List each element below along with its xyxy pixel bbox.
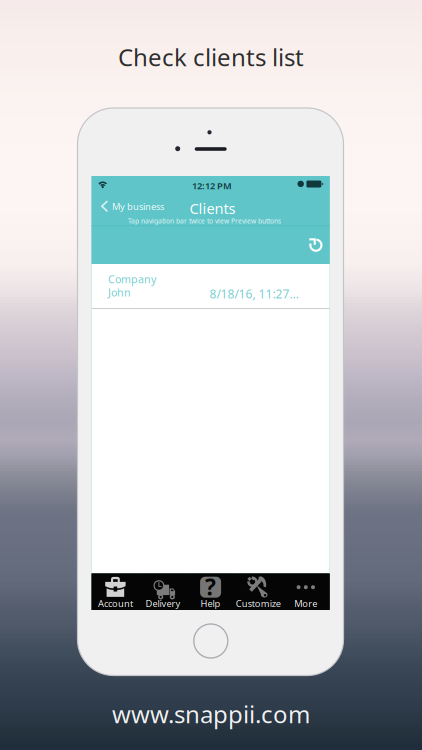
button[interactable]: ? (187, 573, 234, 610)
staticText: 12:12 PM (192, 179, 232, 192)
button[interactable]: Customize (234, 573, 282, 610)
staticText: John (108, 285, 131, 299)
staticText: 8/18/16, 11:27… (209, 286, 298, 302)
button[interactable]: Refresh (302, 231, 330, 259)
staticText: Clients (190, 198, 236, 218)
staticText: ? (205, 572, 216, 602)
staticText: More (294, 597, 317, 610)
button[interactable]: More (282, 573, 330, 610)
staticText: Customize (236, 597, 281, 610)
button[interactable]: My business (92, 198, 168, 215)
staticText: Check clients list (118, 41, 304, 73)
staticText: www.snappii.com (112, 698, 310, 730)
staticText: My business (112, 200, 164, 213)
staticText: Company (108, 272, 156, 286)
staticText: Help (201, 597, 221, 610)
staticText: Account (98, 597, 133, 610)
button[interactable]: Company (92, 264, 330, 308)
button[interactable]: Account (92, 573, 139, 610)
staticText: Delivery (145, 597, 180, 610)
button[interactable]: Delivery (139, 573, 187, 610)
staticText: Tap navigation bar twice to view Preview… (128, 217, 281, 225)
